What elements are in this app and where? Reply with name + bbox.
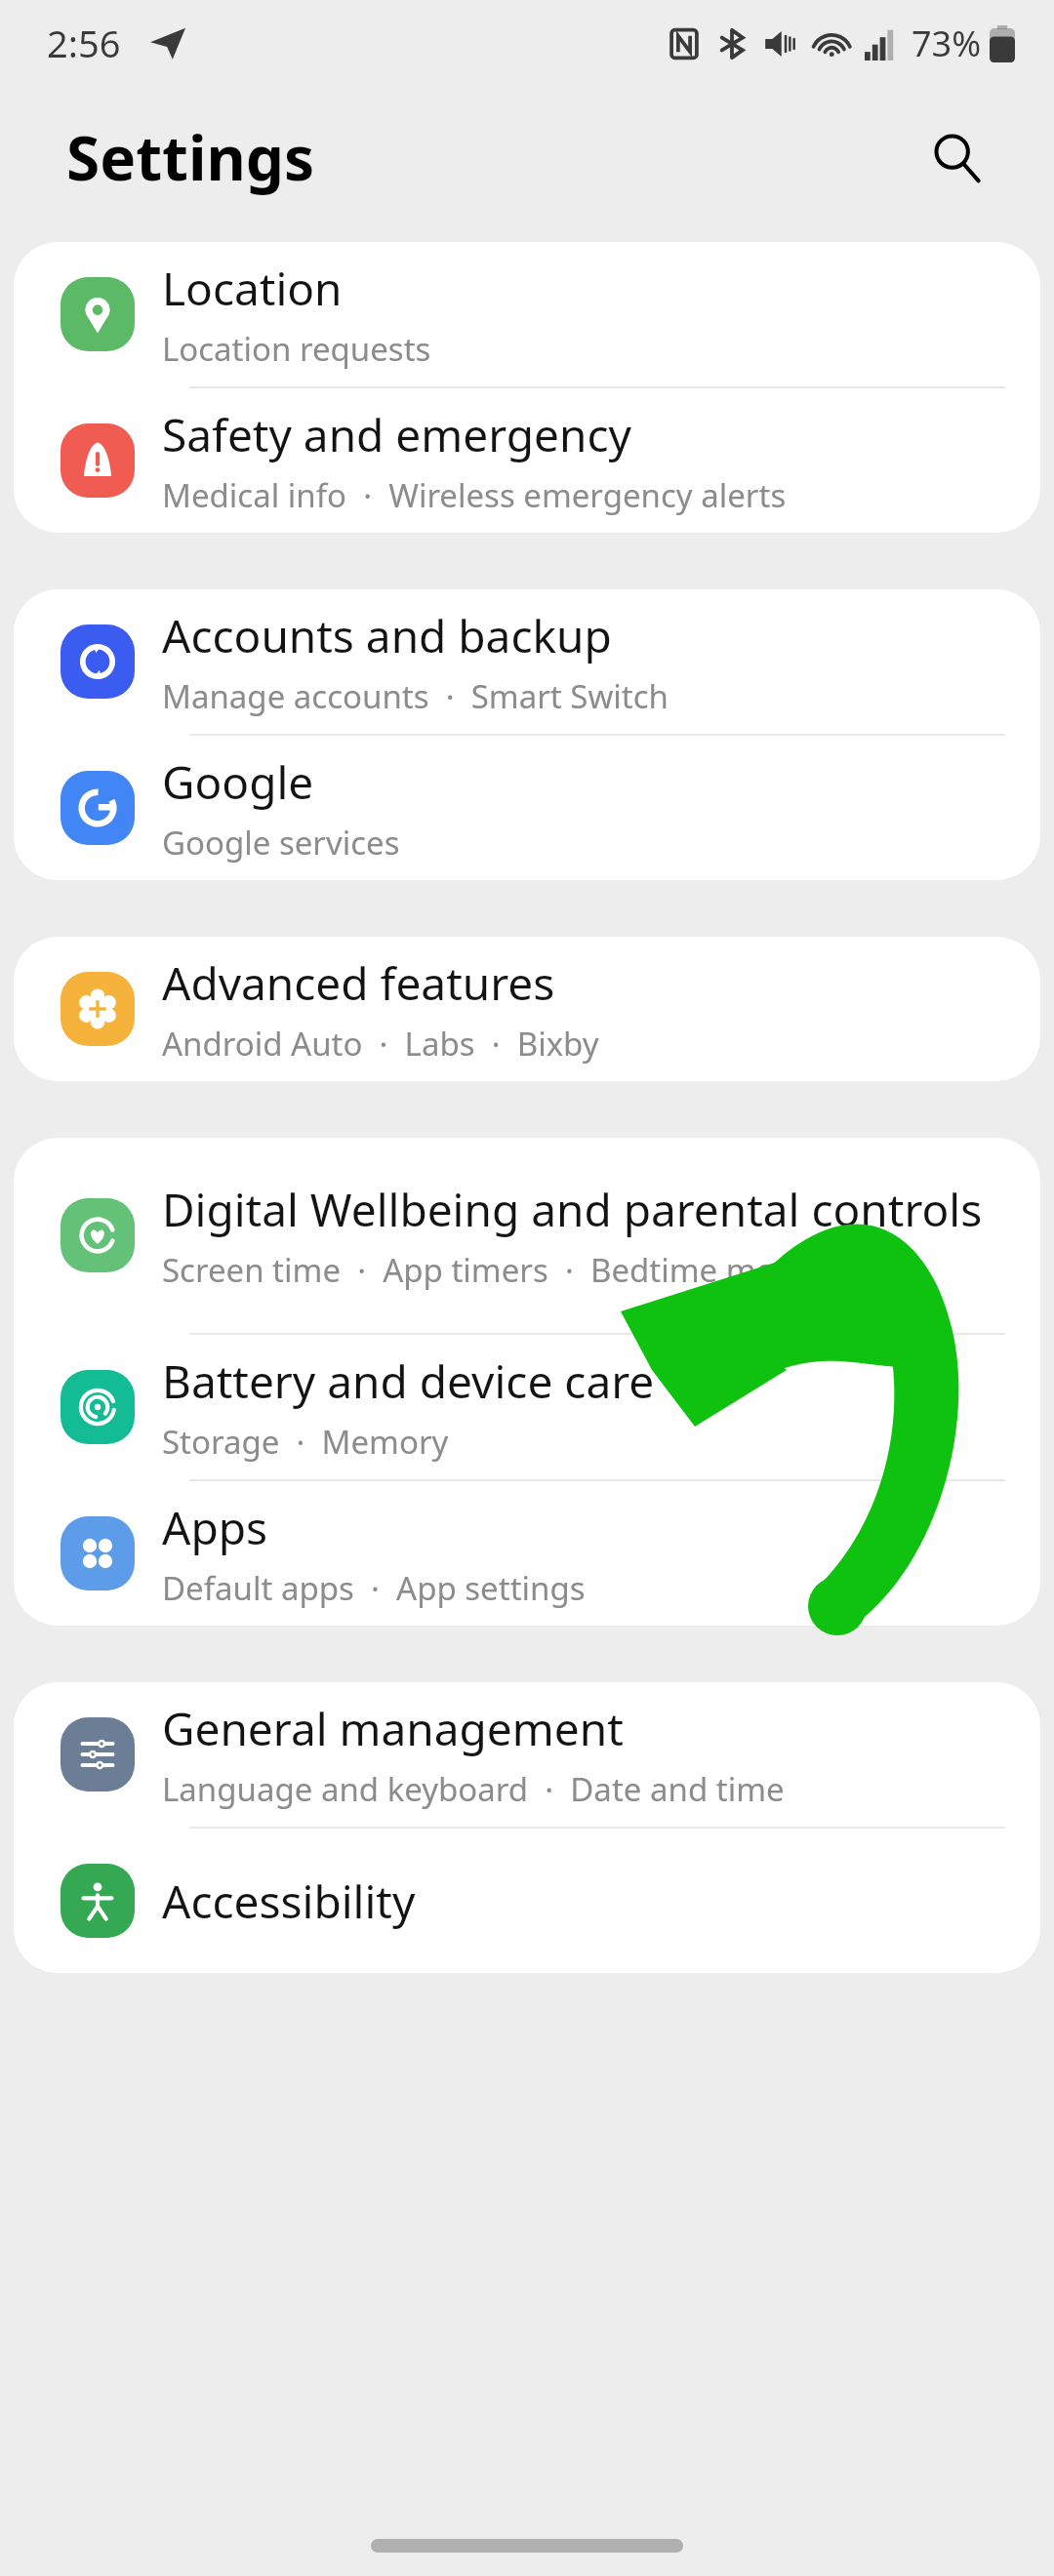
button[interactable]: Advanced features — [14, 937, 1040, 1081]
staticText: Manage accounts · Smart Switch — [162, 674, 669, 718]
button[interactable]: Accessibility — [14, 1829, 1040, 1973]
button[interactable]: Accounts and backup — [14, 589, 1040, 734]
staticText: Medical info · Wireless emergency alerts — [162, 473, 787, 517]
staticText: General management — [162, 1698, 624, 1759]
staticText: Google services — [162, 821, 400, 865]
button[interactable]: Google — [14, 736, 1040, 880]
button[interactable]: Apps — [14, 1481, 1040, 1626]
staticText: Location — [162, 258, 343, 319]
button[interactable]: Battery and device care — [14, 1335, 1040, 1479]
staticText: Settings — [66, 116, 315, 198]
staticText: Storage · Memory — [162, 1420, 449, 1464]
staticText: Language and keyboard · Date and time — [162, 1767, 785, 1811]
staticText: Digital Wellbeing and parental controls — [162, 1179, 983, 1240]
button[interactable]: Search settings — [912, 112, 1001, 202]
staticText: Google — [162, 751, 314, 813]
staticText: Battery and device care — [162, 1350, 655, 1412]
staticText: Android Auto · Labs · Bixby — [162, 1022, 599, 1066]
staticText: Apps — [162, 1497, 268, 1558]
staticText: 2:56 — [47, 18, 121, 68]
staticText: Location requests — [162, 327, 431, 371]
staticText: Accessibility — [162, 1871, 416, 1932]
button[interactable]: General management — [14, 1682, 1040, 1827]
staticText: Safety and emergency — [162, 404, 631, 465]
button[interactable]: Safety and emergency — [14, 388, 1040, 533]
staticText: Screen time · App timers · Bedtime mode — [162, 1248, 814, 1292]
staticText: Advanced features — [162, 952, 555, 1014]
button[interactable]: Digital Wellbeing and parental controls — [14, 1138, 1040, 1333]
staticText: Accounts and backup — [162, 605, 612, 666]
staticText: Default apps · App settings — [162, 1566, 586, 1610]
button[interactable]: Location — [14, 242, 1040, 386]
staticText: 73% — [912, 20, 982, 67]
